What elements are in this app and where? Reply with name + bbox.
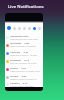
staticText: Notification title <box>10 34 29 37</box>
staticText: Live Notifications <box>8 3 44 9</box>
button[interactable]: Photos · 7:30 <box>6 65 42 73</box>
button[interactable]: Updates · 5:15 <box>6 81 42 87</box>
staticText: New message received today <box>10 44 42 49</box>
button[interactable]: Notification title <box>6 33 42 41</box>
staticText: Battery saver turned on <box>10 77 37 80</box>
staticText: Messages · now <box>10 41 30 44</box>
staticText: Calendar · 9:40 <box>10 50 29 53</box>
staticText: Updates · 5:15 <box>10 81 28 84</box>
button[interactable]: Reminder · 8:10 <box>6 57 42 65</box>
staticText: Meeting starts in 10 min <box>10 53 38 56</box>
staticText: 3 apps were updated <box>10 84 34 87</box>
button[interactable]: Calendar · 9:40 <box>6 49 42 57</box>
staticText: Supporting text line here <box>10 37 38 40</box>
button[interactable]: System · 6:00 <box>6 73 42 81</box>
staticText: Reminder · 8:10 <box>10 58 30 61</box>
button[interactable]: App <box>7 26 11 30</box>
button[interactable]: Messages · now <box>6 41 42 49</box>
staticText: New memory is ready now <box>10 69 40 72</box>
staticText: System · 6:00 <box>10 74 27 77</box>
staticText: Photos · 7:30 <box>10 66 26 69</box>
staticText: Pick up laundry at noon <box>10 61 37 64</box>
